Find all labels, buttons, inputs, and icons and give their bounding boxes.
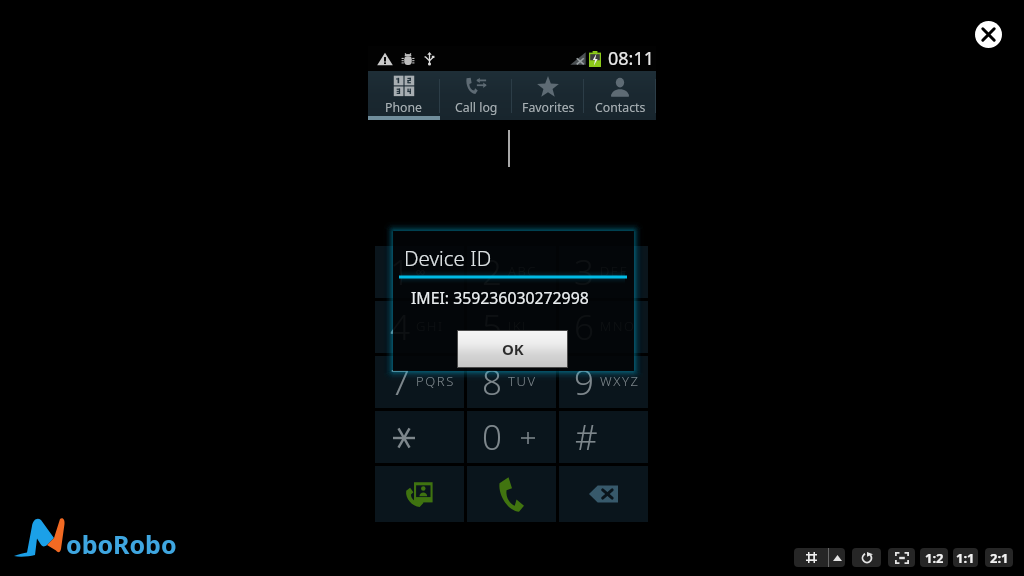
staticText: DEF [600, 262, 628, 280]
staticText: 3 [574, 248, 594, 296]
button[interactable]: 4 [375, 301, 464, 353]
staticText: # [575, 413, 598, 461]
staticText: PQRS [416, 372, 455, 390]
staticText: 1:1 [956, 549, 975, 567]
staticText: 7 [390, 358, 410, 406]
button[interactable]: star [375, 411, 464, 463]
button[interactable]: Contacts [584, 71, 656, 120]
button[interactable]: Call [467, 466, 556, 522]
staticText: Favorites [522, 99, 575, 116]
staticText: 1:2 [925, 549, 944, 567]
staticText: oboRobo [66, 527, 177, 561]
button[interactable]: Add to contacts [375, 466, 464, 522]
staticText: OK [502, 339, 524, 359]
staticText: 2:1 [990, 549, 1009, 567]
staticText: 5 [482, 303, 502, 351]
staticText: ABC [508, 262, 538, 280]
button[interactable]: 3 [559, 246, 648, 298]
button[interactable]: More options [829, 548, 845, 567]
button[interactable]: 2:1 [985, 548, 1013, 567]
button[interactable]: Delete [559, 466, 648, 522]
button[interactable]: Call log [440, 71, 512, 120]
staticText: 6 [574, 303, 594, 351]
staticText: Call log [455, 99, 498, 116]
button[interactable]: Rotate [852, 548, 881, 567]
button[interactable]: 7 [375, 356, 464, 408]
button[interactable]: 8 [467, 356, 556, 408]
staticText: TUV [508, 372, 537, 390]
staticText: IMEI: 359236030272998 [411, 287, 589, 309]
button[interactable]: Screenshot [794, 548, 828, 567]
button[interactable]: 6 [559, 301, 648, 353]
staticText: 1 [390, 248, 410, 296]
button[interactable]: 0 [467, 411, 556, 463]
button[interactable]: 2 [467, 246, 556, 298]
staticText: MNO [600, 317, 636, 335]
button[interactable]: 1 [375, 246, 464, 298]
staticText: 8 [482, 358, 502, 406]
button[interactable]: Favorites [512, 71, 584, 120]
staticText: 0 [482, 413, 502, 461]
button[interactable]: Phone [368, 71, 440, 120]
button[interactable]: # [559, 411, 648, 463]
staticText: JKL [508, 317, 531, 335]
staticText: 2 [482, 248, 502, 296]
button[interactable]: Close [975, 21, 1002, 48]
staticText: ∞ [416, 264, 427, 279]
button[interactable]: 5 [467, 301, 556, 353]
staticText: 08:11 [608, 46, 655, 71]
staticText: Device ID [404, 244, 492, 272]
button[interactable]: 1:2 [920, 548, 948, 567]
button[interactable]: 1:1 [953, 548, 978, 567]
button[interactable]: OK [458, 331, 567, 367]
staticText: WXYZ [600, 372, 640, 390]
staticText: Contacts [595, 99, 646, 116]
staticText: 4 [390, 303, 410, 351]
button[interactable]: 9 [559, 356, 648, 408]
staticText: 9 [574, 358, 594, 406]
staticText: Phone [385, 99, 423, 116]
button[interactable]: Fullscreen [888, 548, 915, 567]
